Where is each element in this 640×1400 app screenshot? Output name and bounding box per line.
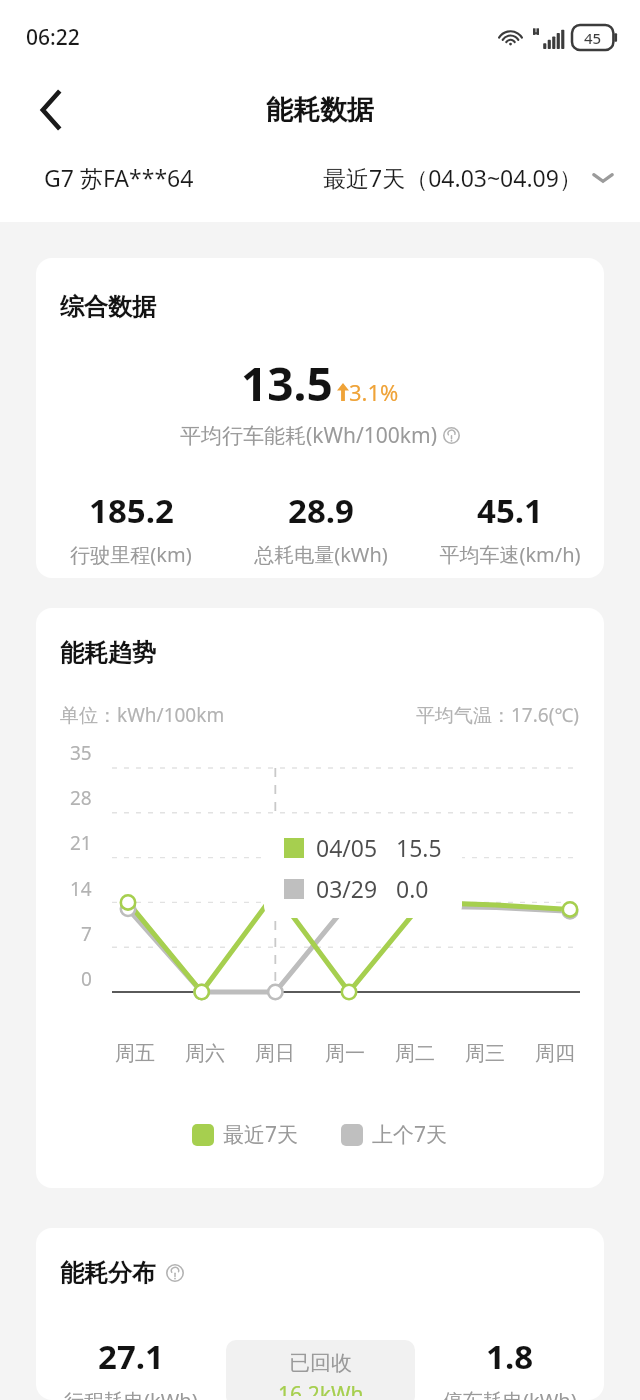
staticText: 16.2kWh [278, 1380, 364, 1396]
staticText: 最近7天（04.03~04.09） [323, 162, 582, 193]
staticText: 1.8 [486, 1334, 534, 1379]
staticText: 03/29 [316, 873, 378, 904]
staticText: 周五 [115, 1041, 155, 1066]
staticText: 04/05 [316, 832, 378, 863]
staticText: 已回收 [289, 1350, 352, 1376]
staticText: 3.1% [349, 377, 399, 407]
staticText: 28 [70, 785, 92, 811]
staticText: 周日 [255, 1041, 295, 1066]
staticText: 0.0 [396, 873, 429, 904]
staticText: 能耗趋势 [60, 638, 156, 668]
staticText: 平均车速(km/h) [439, 541, 581, 568]
staticText: 27.1 [98, 1334, 164, 1379]
staticText: 总耗电量(kWh) [254, 541, 388, 568]
staticText: 行驶里程(km) [70, 541, 192, 568]
staticText: 周六 [185, 1041, 225, 1066]
staticText: 45 [584, 28, 602, 48]
staticText: 停车耗电(kWh) [443, 1387, 577, 1400]
staticText: 能耗数据 [266, 93, 374, 127]
staticText: 35 [70, 740, 92, 766]
staticText: 06:22 [26, 23, 80, 52]
staticText: 0 [81, 966, 92, 992]
staticText: 21 [70, 830, 92, 856]
staticText: 13.5 [241, 352, 333, 415]
staticText: 周一 [325, 1041, 365, 1066]
staticText: 平均行车能耗(kWh/100km) [180, 421, 438, 450]
button[interactable]: Back [20, 79, 82, 141]
staticText: 单位：kWh/100km [60, 702, 225, 728]
staticText: 周三 [465, 1041, 505, 1066]
staticText: 14 [70, 876, 92, 902]
staticText: 上个7天 [372, 1120, 448, 1149]
staticText: G7 苏FA***64 [44, 162, 194, 193]
staticText: 行程耗电(kWh) [64, 1387, 198, 1400]
staticText: 最近7天 [223, 1120, 299, 1149]
staticText: 能耗分布 [60, 1258, 156, 1288]
staticText: 45.1 [477, 488, 543, 533]
staticText: 综合数据 [60, 292, 156, 322]
button[interactable]: 最近7天（04.03~04.09） [319, 158, 618, 197]
staticText: 28.9 [288, 488, 354, 533]
staticText: 周四 [535, 1041, 575, 1066]
button[interactable]: 上个7天 [337, 1116, 452, 1153]
button[interactable]: 最近7天 [188, 1116, 303, 1153]
staticText: 7 [81, 921, 92, 947]
staticText: 15.5 [396, 832, 442, 863]
staticText: 185.2 [89, 488, 174, 533]
staticText: 周二 [395, 1041, 435, 1066]
staticText: 平均气温：17.6(℃) [416, 702, 580, 728]
